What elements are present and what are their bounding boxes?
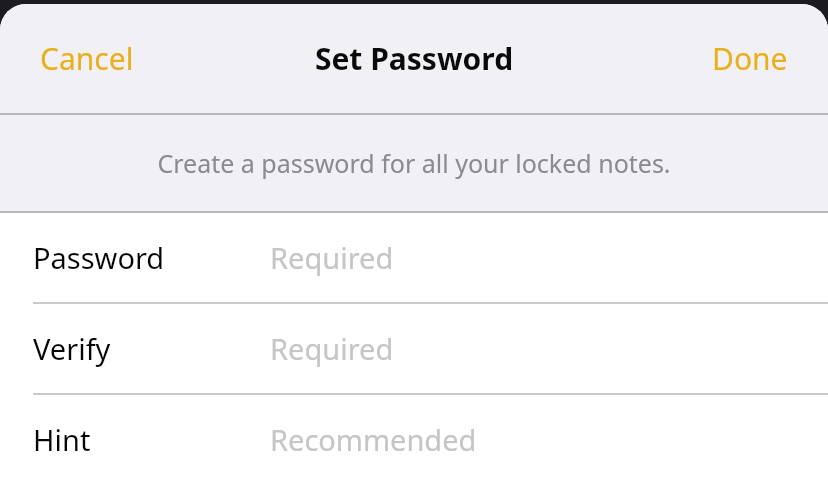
button[interactable]: Cancel xyxy=(0,20,158,97)
staticText: Required xyxy=(270,238,394,277)
button[interactable]: Hint xyxy=(0,395,828,483)
button[interactable]: Password xyxy=(0,213,828,302)
staticText: Verify xyxy=(33,329,111,368)
staticText: Hint xyxy=(33,420,91,459)
staticText: Required xyxy=(270,329,394,368)
button[interactable]: Verify xyxy=(0,304,828,393)
staticText: Recommended xyxy=(270,420,477,459)
staticText: Create a password for all your locked no… xyxy=(0,146,828,180)
staticText: Cancel xyxy=(40,38,134,79)
staticText: Done xyxy=(712,38,788,79)
staticText: Password xyxy=(33,238,165,277)
button[interactable]: Done xyxy=(688,20,828,97)
staticText: Set Password xyxy=(0,38,828,79)
